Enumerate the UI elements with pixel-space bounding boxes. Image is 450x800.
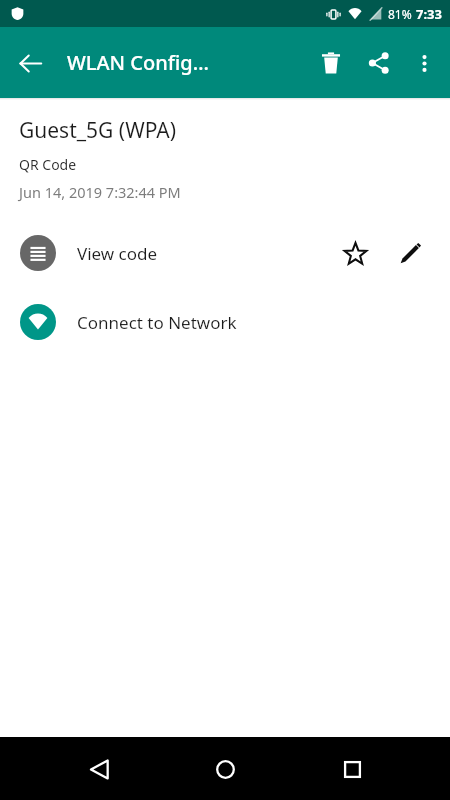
- button[interactable]: Back: [71, 741, 127, 797]
- button[interactable]: Back: [6, 39, 54, 87]
- button[interactable]: Home: [197, 741, 253, 797]
- button[interactable]: Recents: [324, 741, 380, 797]
- button[interactable]: Favorite: [332, 230, 378, 276]
- button[interactable]: Share: [355, 39, 403, 87]
- staticText: WLAN Config…: [67, 49, 209, 76]
- staticText: Jun 14, 2019 7:32:44 PM: [19, 182, 181, 202]
- staticText: Guest_5G (WPA): [19, 116, 177, 145]
- button[interactable]: View code: [0, 228, 450, 278]
- button[interactable]: More options: [403, 42, 445, 84]
- button[interactable]: Edit: [389, 232, 431, 274]
- staticText: QR Code: [19, 155, 77, 174]
- staticText: Connect to Network: [77, 311, 237, 334]
- button[interactable]: Delete: [307, 39, 355, 87]
- staticText: 7:33: [416, 5, 442, 23]
- staticText: 81%: [388, 6, 412, 22]
- button[interactable]: Connect to Network: [0, 297, 450, 347]
- staticText: View code: [77, 242, 158, 265]
